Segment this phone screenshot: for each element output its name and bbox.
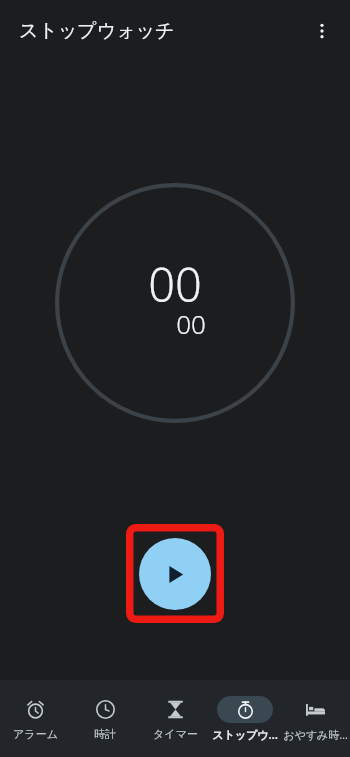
- staticText: 00: [176, 306, 206, 341]
- button[interactable]: Start: [139, 538, 211, 610]
- staticText: アラーム: [13, 727, 58, 741]
- staticText: ストップウォッチ: [19, 19, 175, 43]
- staticText: おやすみ時…: [283, 727, 348, 742]
- staticText: 00: [148, 252, 202, 316]
- staticText: ストップウ…: [212, 727, 278, 742]
- button[interactable]: 時計: [70, 680, 140, 757]
- button[interactable]: More options: [300, 9, 344, 53]
- button[interactable]: アラーム: [0, 680, 70, 757]
- button[interactable]: ストップウ…: [210, 680, 280, 757]
- button[interactable]: おやすみ時…: [280, 680, 350, 757]
- staticText: 時計: [94, 727, 116, 741]
- button[interactable]: タイマー: [140, 680, 210, 757]
- staticText: タイマー: [153, 727, 198, 741]
